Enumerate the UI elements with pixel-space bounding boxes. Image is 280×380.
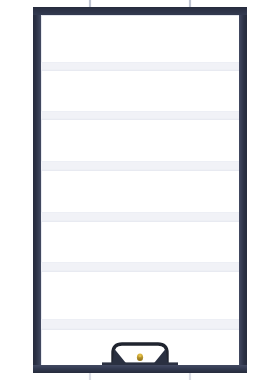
button[interactable]: Framed whiteboard [0, 0, 280, 380]
